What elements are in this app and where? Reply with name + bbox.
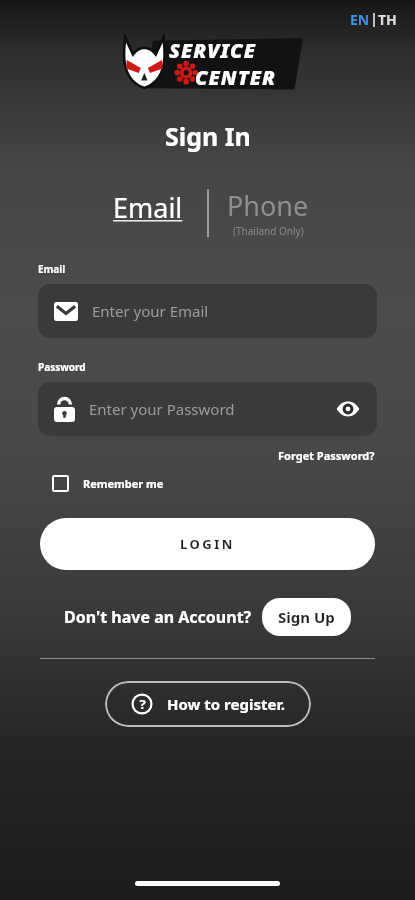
- staticText: Phone: [227, 187, 309, 224]
- staticText: CENTER: [195, 64, 276, 91]
- staticText: Enter your Email: [92, 301, 209, 321]
- button[interactable]: Show password: [333, 394, 363, 424]
- button[interactable]: Sign Up: [262, 598, 351, 636]
- staticText: Remember me: [83, 476, 164, 491]
- button[interactable]: Email: [103, 187, 193, 228]
- staticText: Email: [113, 189, 183, 226]
- button[interactable]: EN: [346, 8, 401, 31]
- staticText: LOGIN: [180, 535, 235, 553]
- staticText: TH: [378, 10, 397, 29]
- button[interactable]: Remember me: [50, 471, 166, 496]
- staticText: Don't have an Account?: [64, 606, 252, 628]
- staticText: EN: [350, 10, 370, 29]
- button[interactable]: Forget Password?: [276, 446, 377, 465]
- button[interactable]: Enter your Password: [38, 382, 377, 436]
- staticText: ?: [139, 695, 146, 713]
- button[interactable]: ?: [105, 681, 311, 727]
- staticText: Forget Password?: [278, 448, 375, 463]
- staticText: Password: [38, 360, 86, 374]
- staticText: Enter your Password: [89, 399, 333, 419]
- button[interactable]: LOGIN: [40, 518, 375, 570]
- staticText: Sign Up: [278, 607, 335, 627]
- staticText: Email: [38, 262, 66, 276]
- staticText: How to register.: [167, 694, 285, 714]
- button[interactable]: Phone: [223, 187, 313, 238]
- staticText: SERVICE: [169, 37, 256, 64]
- staticText: (Thailand Only): [233, 224, 304, 238]
- staticText: Sign In: [165, 119, 251, 153]
- button[interactable]: Enter your Email: [38, 284, 377, 338]
